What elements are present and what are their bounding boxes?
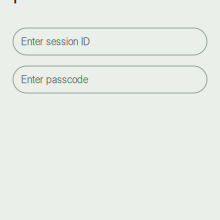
button[interactable]: Enter passcode bbox=[13, 66, 207, 93]
button[interactable]: Enter session ID bbox=[13, 28, 207, 55]
staticText: Enter passcode bbox=[21, 73, 88, 86]
staticText: Enter session ID bbox=[21, 35, 90, 48]
staticText: passcode bbox=[13, 0, 102, 4]
